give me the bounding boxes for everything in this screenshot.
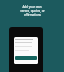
button[interactable] — [15, 56, 37, 60]
staticText: verses, quotes, or — [20, 9, 45, 13]
staticText: Add your own — [22, 5, 42, 9]
staticText: affirmations — [24, 13, 41, 17]
